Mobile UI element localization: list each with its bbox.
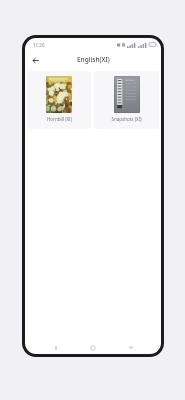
button[interactable]: Back — [28, 53, 42, 67]
staticText: 11:20 — [33, 42, 45, 48]
button[interactable]: Home — [86, 342, 100, 354]
staticText: Hornbill (XI) — [47, 116, 72, 122]
button[interactable]: Back — [49, 342, 63, 354]
staticText: English(XI) — [77, 55, 110, 64]
button[interactable]: Snapshots (XI) — [94, 71, 159, 129]
button[interactable]: Recent apps — [124, 342, 138, 354]
staticText: Snapshots (XI) — [111, 116, 142, 122]
button[interactable]: Hornbill (XI) — [27, 71, 91, 129]
